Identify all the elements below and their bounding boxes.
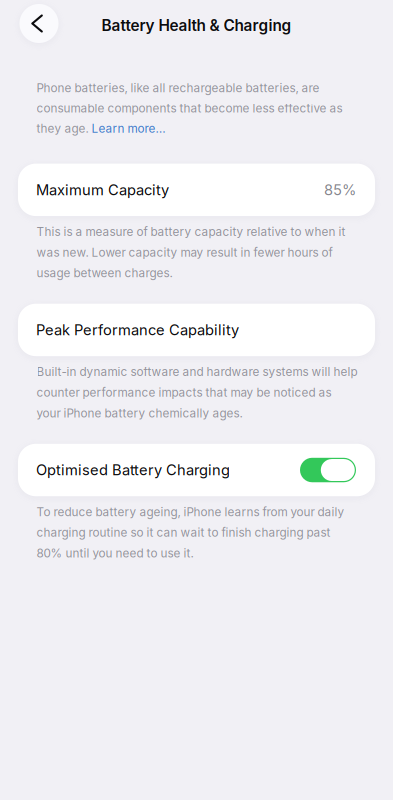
staticText: To reduce battery ageing, iPhone learns … xyxy=(37,505,345,560)
staticText: Phone batteries, like all rechargeable b… xyxy=(37,81,320,95)
button[interactable]: Maximum Capacity xyxy=(18,164,375,216)
staticText: Maximum Capacity xyxy=(36,181,169,199)
button[interactable]: Back xyxy=(19,4,58,43)
button[interactable]: Learn more… xyxy=(92,121,166,136)
staticText: 85% xyxy=(324,181,356,199)
staticText: Learn more… xyxy=(92,121,166,136)
staticText: Built-in dynamic software and hardware s… xyxy=(37,365,358,420)
staticText: Peak Performance Capability xyxy=(36,321,239,339)
staticText: Optimised Battery Charging xyxy=(36,461,230,479)
staticText: consumable components that become less e… xyxy=(37,101,343,115)
button[interactable]: Optimised Battery Charging xyxy=(18,444,375,496)
button[interactable]: Peak Performance Capability xyxy=(18,304,375,356)
staticText: Battery Health & Charging xyxy=(101,16,291,35)
staticText: they age. xyxy=(37,121,92,136)
staticText: This is a measure of battery capacity re… xyxy=(37,225,346,280)
